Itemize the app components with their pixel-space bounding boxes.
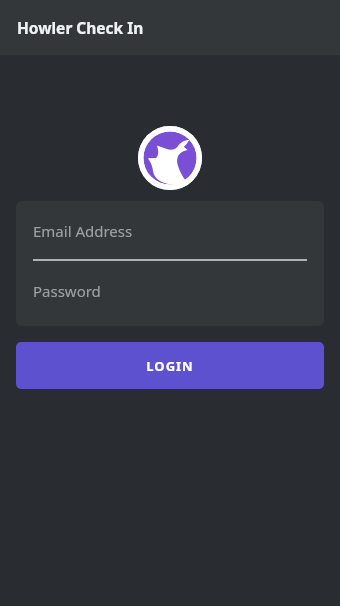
button[interactable]: Email Address <box>16 201 324 261</box>
button[interactable]: Password <box>16 261 324 321</box>
staticText: LOGIN <box>146 357 194 375</box>
staticText: Howler Check In <box>17 17 144 38</box>
button[interactable]: LOGIN <box>16 342 324 389</box>
staticText: Email Address <box>33 221 133 241</box>
other: Howler logo <box>138 126 202 190</box>
staticText: Password <box>33 281 101 301</box>
